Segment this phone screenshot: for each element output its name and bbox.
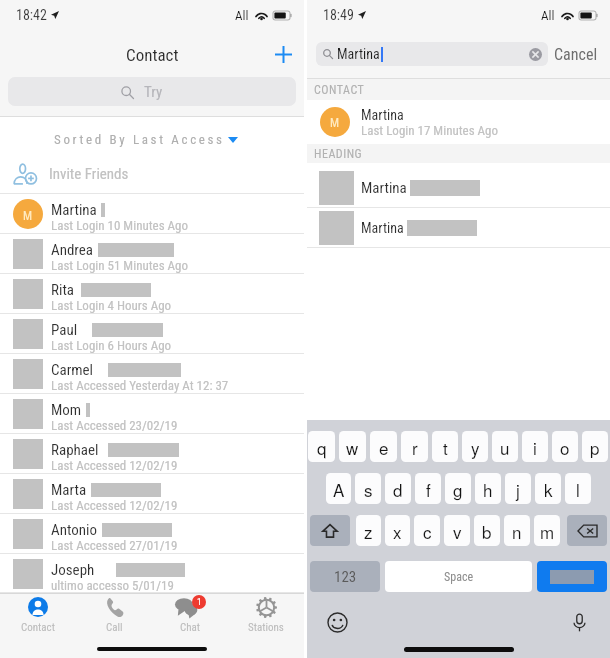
button[interactable]: Martina <box>307 168 610 207</box>
staticText: i <box>533 435 537 459</box>
staticText: Stations <box>248 621 284 634</box>
staticText: Last Accessed 27/01/19 <box>51 538 178 553</box>
button[interactable]: n <box>504 515 530 546</box>
staticText: Martina <box>337 46 380 62</box>
staticText: h <box>483 477 493 501</box>
button[interactable]: Add contact <box>268 39 298 69</box>
staticText: Cancel <box>554 45 598 64</box>
staticText: x <box>393 519 402 543</box>
button[interactable]: d <box>385 473 411 504</box>
button[interactable]: u <box>492 431 518 462</box>
button[interactable]: Stations <box>228 594 304 636</box>
staticText: v <box>453 519 462 543</box>
button[interactable]: Marta <box>0 474 304 514</box>
button[interactable]: Martina <box>316 42 548 66</box>
button[interactable]: Mom <box>0 394 304 434</box>
button[interactable]: h <box>475 473 501 504</box>
button[interactable]: m <box>534 515 560 546</box>
staticText: HEADING <box>314 147 363 161</box>
button[interactable]: A <box>326 473 351 504</box>
button[interactable]: Shift <box>310 515 350 546</box>
button[interactable]: 1 <box>152 594 228 636</box>
staticText: M <box>23 209 33 223</box>
staticText: 123 <box>334 568 357 586</box>
staticText: b <box>482 519 492 543</box>
button[interactable]: e <box>370 431 397 462</box>
staticText: Contact <box>21 621 55 634</box>
button[interactable]: v <box>444 515 470 546</box>
staticText: A <box>333 477 345 501</box>
button[interactable]: b <box>474 515 500 546</box>
button[interactable]: i <box>522 431 548 462</box>
staticText: Last Accessed 12/02/19 <box>51 498 178 513</box>
button[interactable]: l <box>565 473 591 504</box>
button[interactable]: Joseph <box>0 554 304 593</box>
button[interactable]: Space <box>385 561 532 592</box>
staticText: w <box>346 435 359 459</box>
button[interactable]: j <box>505 473 531 504</box>
staticText: Andrea <box>51 241 94 259</box>
button[interactable]: Emoji <box>327 612 348 633</box>
button[interactable]: Martina <box>307 208 610 247</box>
staticText: z <box>364 519 373 543</box>
staticText: Last Accessed Yesterday At 12: 37 <box>51 378 229 393</box>
button[interactable]: Rita <box>0 274 304 314</box>
staticText: m <box>540 519 555 543</box>
button[interactable]: Call <box>76 594 152 636</box>
button[interactable]: z <box>356 515 381 546</box>
button[interactable]: t <box>432 431 458 462</box>
button[interactable]: p <box>582 431 608 462</box>
staticText: Last Accessed 12/02/19 <box>51 458 178 473</box>
button[interactable]: Cancel <box>552 45 600 64</box>
button[interactable]: c <box>414 515 440 546</box>
button[interactable]: Clear text <box>529 48 542 61</box>
button[interactable]: s <box>355 473 381 504</box>
staticText: Carmel <box>51 361 94 379</box>
staticText: M <box>330 116 340 130</box>
staticText: y <box>471 435 480 459</box>
button[interactable]: x <box>385 515 410 546</box>
button[interactable]: q <box>308 431 335 462</box>
button[interactable]: y <box>462 431 488 462</box>
staticText: q <box>317 435 327 459</box>
button[interactable]: Contact <box>0 594 76 636</box>
button[interactable]: Antonio <box>0 514 304 554</box>
staticText: Sorted By Last Access <box>54 132 225 147</box>
staticText: CONTACT <box>314 83 365 97</box>
button[interactable]: Microphone <box>569 612 590 633</box>
staticText: All <box>541 8 555 23</box>
button[interactable]: Backspace <box>567 515 607 546</box>
button[interactable]: 123 <box>310 561 380 592</box>
staticText: Call <box>106 621 123 634</box>
button[interactable]: Andrea <box>0 234 304 274</box>
button[interactable]: Try <box>8 77 296 106</box>
button[interactable]: Sorted By Last Access <box>0 117 304 155</box>
staticText: c <box>423 519 432 543</box>
staticText: Last Login 10 Minutes Ago <box>51 218 189 233</box>
staticText: Antonio <box>51 521 97 539</box>
button[interactable] <box>537 561 607 592</box>
button[interactable]: r <box>401 431 428 462</box>
button[interactable]: M <box>0 194 304 234</box>
staticText: Martina <box>361 220 404 236</box>
staticText: Try <box>144 83 163 101</box>
staticText: Space <box>444 570 474 584</box>
staticText: j <box>516 477 520 501</box>
staticText: e <box>379 435 389 459</box>
button[interactable]: o <box>552 431 578 462</box>
button[interactable]: Carmel <box>0 354 304 394</box>
button[interactable]: w <box>339 431 366 462</box>
staticText: Paul <box>51 321 78 339</box>
staticText: p <box>590 435 600 459</box>
staticText: Joseph <box>51 561 95 579</box>
staticText: g <box>453 477 463 501</box>
button[interactable]: M <box>307 100 610 144</box>
button[interactable]: Raphael <box>0 434 304 474</box>
button[interactable]: k <box>535 473 561 504</box>
button[interactable]: Invite Friends <box>0 155 304 193</box>
staticText: Invite Friends <box>49 165 129 183</box>
staticText: 18:42 <box>16 7 47 23</box>
button[interactable]: Paul <box>0 314 304 354</box>
button[interactable]: f <box>415 473 441 504</box>
button[interactable]: g <box>445 473 471 504</box>
